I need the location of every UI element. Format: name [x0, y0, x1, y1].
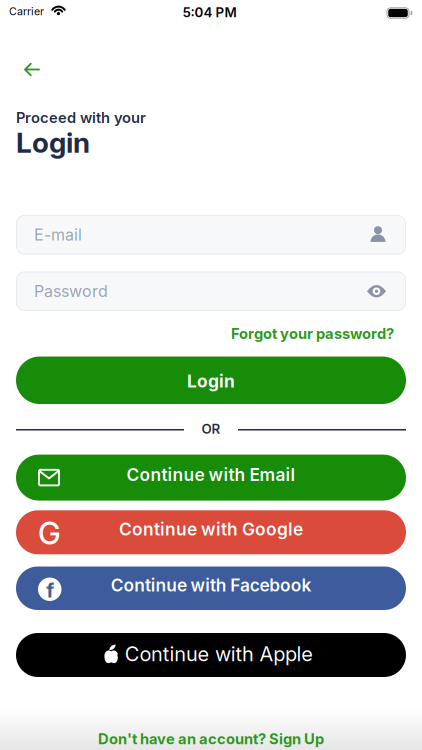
button[interactable]: Password — [16, 271, 406, 311]
button[interactable]: Login — [16, 356, 406, 404]
button[interactable]: Continue with Email — [16, 455, 406, 501]
staticText: Continue with Apple — [125, 642, 313, 666]
staticText: Login — [187, 371, 235, 391]
staticText: 5:04 PM — [182, 4, 236, 20]
button[interactable]: Don't have an account? Sign Up — [98, 730, 324, 748]
staticText: E-mail — [34, 225, 82, 244]
staticText: Don't have an account? Sign Up — [98, 730, 324, 748]
staticText: Login — [16, 126, 90, 159]
staticText: G — [38, 515, 61, 551]
staticText: Proceed with your — [16, 109, 146, 126]
staticText: Continue with Email — [126, 464, 295, 485]
staticText: OR — [201, 421, 220, 437]
staticText: f — [46, 578, 54, 602]
staticText: Continue with Google — [119, 519, 303, 539]
button[interactable]: Forgot your password? — [231, 325, 394, 342]
staticText: Password — [34, 282, 108, 301]
button[interactable]: E-mail — [16, 215, 406, 254]
staticText: Continue with Facebook — [111, 575, 311, 595]
button[interactable]: Back — [17, 55, 47, 84]
button[interactable]: Continue with Facebook — [16, 566, 406, 610]
staticText: Forgot your password? — [231, 325, 394, 342]
button[interactable]: Continue with Google — [16, 510, 406, 554]
button[interactable]: Continue with Apple — [16, 633, 406, 677]
staticText: Carrier — [9, 5, 44, 18]
